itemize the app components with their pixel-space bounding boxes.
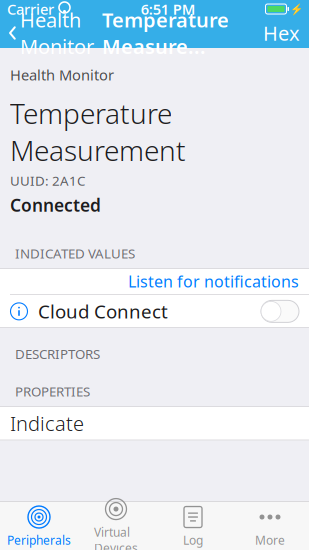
staticText: Connected bbox=[10, 193, 101, 216]
staticText: Carrier bbox=[7, 0, 54, 19]
button[interactable]: Cloud Connect bbox=[0, 295, 309, 328]
staticText: DESCRIPTORS bbox=[15, 345, 100, 363]
staticText: Cloud Connect bbox=[38, 299, 168, 324]
staticText: Temperature Measurement bbox=[10, 94, 186, 169]
staticText: ⚡ bbox=[290, 3, 303, 15]
button[interactable]: Peripherals bbox=[0, 502, 77, 550]
staticText: More bbox=[255, 532, 285, 548]
staticText: PROPERTIES bbox=[15, 383, 90, 400]
button[interactable]: More bbox=[231, 502, 308, 550]
button[interactable]: Log bbox=[154, 502, 231, 550]
staticText: INDICATED VALUES bbox=[15, 245, 135, 262]
button[interactable]: Health Monitor bbox=[0, 18, 98, 48]
button[interactable]: Listen for notifications bbox=[0, 268, 309, 294]
staticText: Virtual Devices bbox=[94, 524, 138, 550]
button[interactable]: Indicate bbox=[0, 406, 309, 440]
staticText: Indicate bbox=[10, 410, 84, 437]
staticText: Health Monitor bbox=[10, 65, 114, 84]
staticText: Hex bbox=[263, 20, 300, 46]
button[interactable]: Virtual Devices bbox=[77, 502, 154, 550]
staticText: Log bbox=[183, 532, 203, 548]
staticText: Temperature Measure... bbox=[102, 6, 229, 59]
button[interactable]: Hex bbox=[254, 18, 309, 48]
staticText: Health Monitor bbox=[20, 6, 94, 59]
staticText: UUID: 2A1C bbox=[10, 172, 85, 189]
staticText: Listen for notifications bbox=[128, 271, 299, 292]
staticText: Peripherals bbox=[7, 532, 71, 548]
staticText: 6:51 PM bbox=[141, 0, 196, 19]
